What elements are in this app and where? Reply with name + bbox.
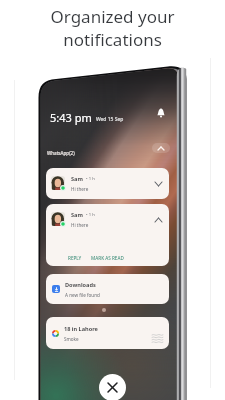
staticText: • 1 h: [86, 176, 95, 182]
staticText: Sam: [71, 175, 83, 183]
button[interactable]: Close: [99, 374, 126, 400]
staticText: Downloads: [65, 281, 96, 289]
button[interactable]: Sam: [46, 168, 169, 199]
staticText: Wed 15 Sep: [96, 116, 124, 123]
staticText: A new file found: [65, 292, 100, 298]
staticText: Sam: [71, 211, 83, 219]
staticText: Organized your notifications: [0, 5, 225, 51]
staticText: • 1 h: [86, 212, 95, 218]
button[interactable]: REPLY: [67, 253, 83, 263]
staticText: 5:43 pm: [50, 110, 92, 125]
staticText: Hi there: [71, 222, 89, 228]
button[interactable]: Sam: [46, 204, 169, 266]
staticText: MARK AS READ: [91, 255, 124, 261]
button[interactable]: 18 in Lahore: [46, 317, 169, 349]
staticText: WhatsApp(2): [47, 150, 75, 156]
staticText: Hi there: [71, 186, 89, 192]
staticText: Smoke: [64, 336, 79, 342]
staticText: 18 in Lahore: [64, 325, 98, 333]
button[interactable]: Collapse group: [152, 143, 170, 153]
staticText: REPLY: [68, 255, 82, 261]
button[interactable]: Downloads: [46, 274, 169, 304]
button[interactable]: MARK AS READ: [90, 253, 125, 263]
